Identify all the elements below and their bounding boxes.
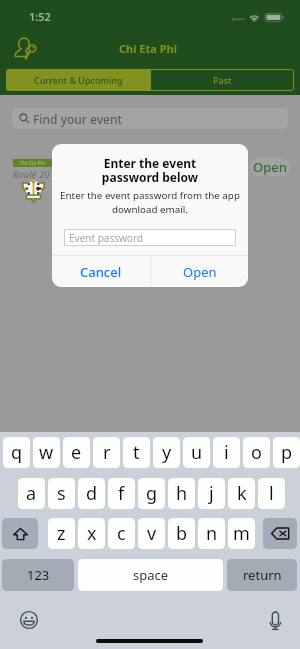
staticText: r [103, 440, 111, 465]
staticText: m [233, 521, 250, 546]
button[interactable]: r [93, 437, 120, 468]
button[interactable]: space [78, 559, 223, 591]
staticText: o [251, 440, 262, 465]
staticText: space [133, 566, 169, 584]
button[interactable]: y [153, 437, 180, 468]
button[interactable]: u [183, 437, 210, 468]
staticText: h [176, 481, 188, 506]
button[interactable]: Event password [64, 229, 236, 246]
button[interactable]: return [227, 559, 297, 591]
staticText: p [281, 440, 293, 465]
button[interactable]: c [108, 518, 135, 549]
button[interactable]: l [258, 478, 285, 509]
staticText: 123 [27, 566, 50, 584]
staticText: Past [213, 74, 232, 86]
button[interactable]: Current & Upcoming [6, 69, 150, 91]
button[interactable]: e [63, 437, 90, 468]
staticText: j [209, 481, 214, 506]
staticText: l [269, 481, 274, 506]
staticText: Chi Eta Phi [119, 41, 178, 56]
button[interactable]: Open [151, 256, 248, 287]
staticText: f [118, 481, 125, 506]
button[interactable]: d [78, 478, 105, 509]
staticText: g [146, 481, 158, 506]
staticText: d [86, 481, 98, 506]
button[interactable]: Cancel [52, 256, 150, 287]
staticText: u [191, 440, 203, 465]
staticText: x [87, 521, 97, 546]
button[interactable]: k [228, 478, 255, 509]
button[interactable]: Shift [2, 518, 38, 549]
staticText: n [206, 521, 218, 546]
button[interactable]: v [138, 518, 165, 549]
button[interactable]: o [243, 437, 270, 468]
staticText: Event password [69, 231, 143, 245]
button[interactable]: Dictation [266, 607, 286, 631]
staticText: Boulé 2015 [13, 168, 61, 180]
button[interactable]: n [198, 518, 225, 549]
button[interactable]: m [228, 518, 255, 549]
staticText: Cancel [80, 263, 122, 281]
staticText: k [237, 481, 247, 506]
staticText: Open [183, 263, 217, 281]
button[interactable]: Member login [13, 34, 37, 60]
staticText: Find your event [33, 111, 123, 127]
staticText: return [243, 566, 282, 584]
staticText: t [133, 440, 140, 465]
staticText: Open [253, 158, 287, 176]
staticText: v [147, 521, 157, 546]
staticText: 1:52 [29, 9, 51, 24]
staticText: Enter the event password from the app do… [52, 189, 248, 215]
staticText: w [39, 440, 54, 465]
staticText: Enter the event password below [52, 155, 248, 185]
button[interactable]: f [108, 478, 135, 509]
button[interactable]: z [48, 518, 75, 549]
button[interactable]: Backspace [263, 518, 297, 549]
staticText: Chi Eta Phi [20, 160, 45, 167]
button[interactable]: Past [150, 69, 294, 91]
button[interactable]: q [3, 437, 30, 468]
button[interactable]: w [33, 437, 60, 468]
button[interactable]: h [168, 478, 195, 509]
staticText: b [176, 521, 188, 546]
button[interactable]: Find your event [12, 108, 288, 129]
button[interactable]: Open [250, 158, 291, 176]
button[interactable]: b [168, 518, 195, 549]
staticText: e [71, 440, 82, 465]
staticText: z [57, 521, 66, 546]
button[interactable]: t [123, 437, 150, 468]
staticText: a [26, 481, 37, 506]
staticText: s [57, 481, 66, 506]
button[interactable]: a [18, 478, 45, 509]
button[interactable]: s [48, 478, 75, 509]
button[interactable]: 123 [2, 559, 74, 591]
button[interactable]: j [198, 478, 225, 509]
button[interactable]: p [273, 437, 300, 468]
staticText: y [162, 440, 172, 465]
button[interactable]: g [138, 478, 165, 509]
staticText: c [117, 521, 126, 546]
button[interactable]: i [213, 437, 240, 468]
staticText: i [224, 440, 229, 465]
button[interactable]: Emoji [19, 610, 39, 630]
staticText: q [11, 440, 23, 465]
button[interactable]: x [78, 518, 105, 549]
staticText: Current & Upcoming [34, 74, 123, 86]
